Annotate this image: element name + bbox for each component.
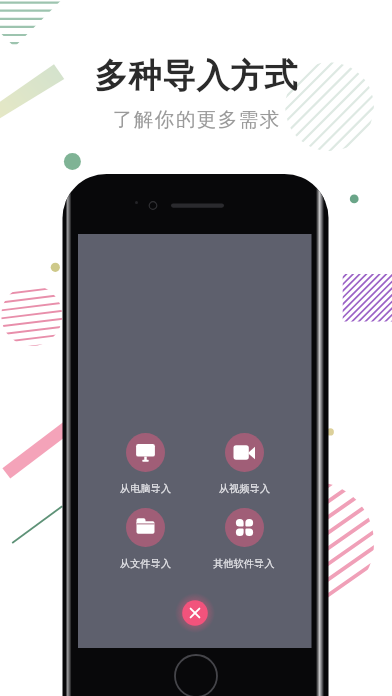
button[interactable]: 从电脑导入 [100, 433, 190, 495]
button[interactable]: 从视频导入 [199, 433, 289, 495]
staticText: 从视频导入 [219, 482, 270, 495]
staticText: 多种导入方式 [94, 55, 298, 97]
staticText: 从电脑导入 [120, 482, 171, 495]
button[interactable]: 从文件导入 [100, 508, 190, 570]
button[interactable]: 其他软件导入 [199, 508, 289, 570]
staticText: 从文件导入 [120, 557, 171, 570]
button[interactable]: Close [175, 593, 215, 633]
staticText: 其他软件导入 [213, 557, 275, 570]
staticText: 了解你的更多需求 [112, 107, 280, 132]
